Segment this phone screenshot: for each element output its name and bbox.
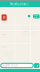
staticText: Park: [24, 30, 28, 32]
staticText: Search here: [2, 64, 18, 67]
staticText: Open: [34, 13, 39, 20]
button[interactable]: Open: [33, 14, 40, 19]
button[interactable]: Selected place: [1, 14, 7, 21]
staticText: Nearby places: [10, 2, 28, 6]
button[interactable]: Search here: [1, 63, 33, 68]
button[interactable]: Locate me: [34, 63, 39, 68]
